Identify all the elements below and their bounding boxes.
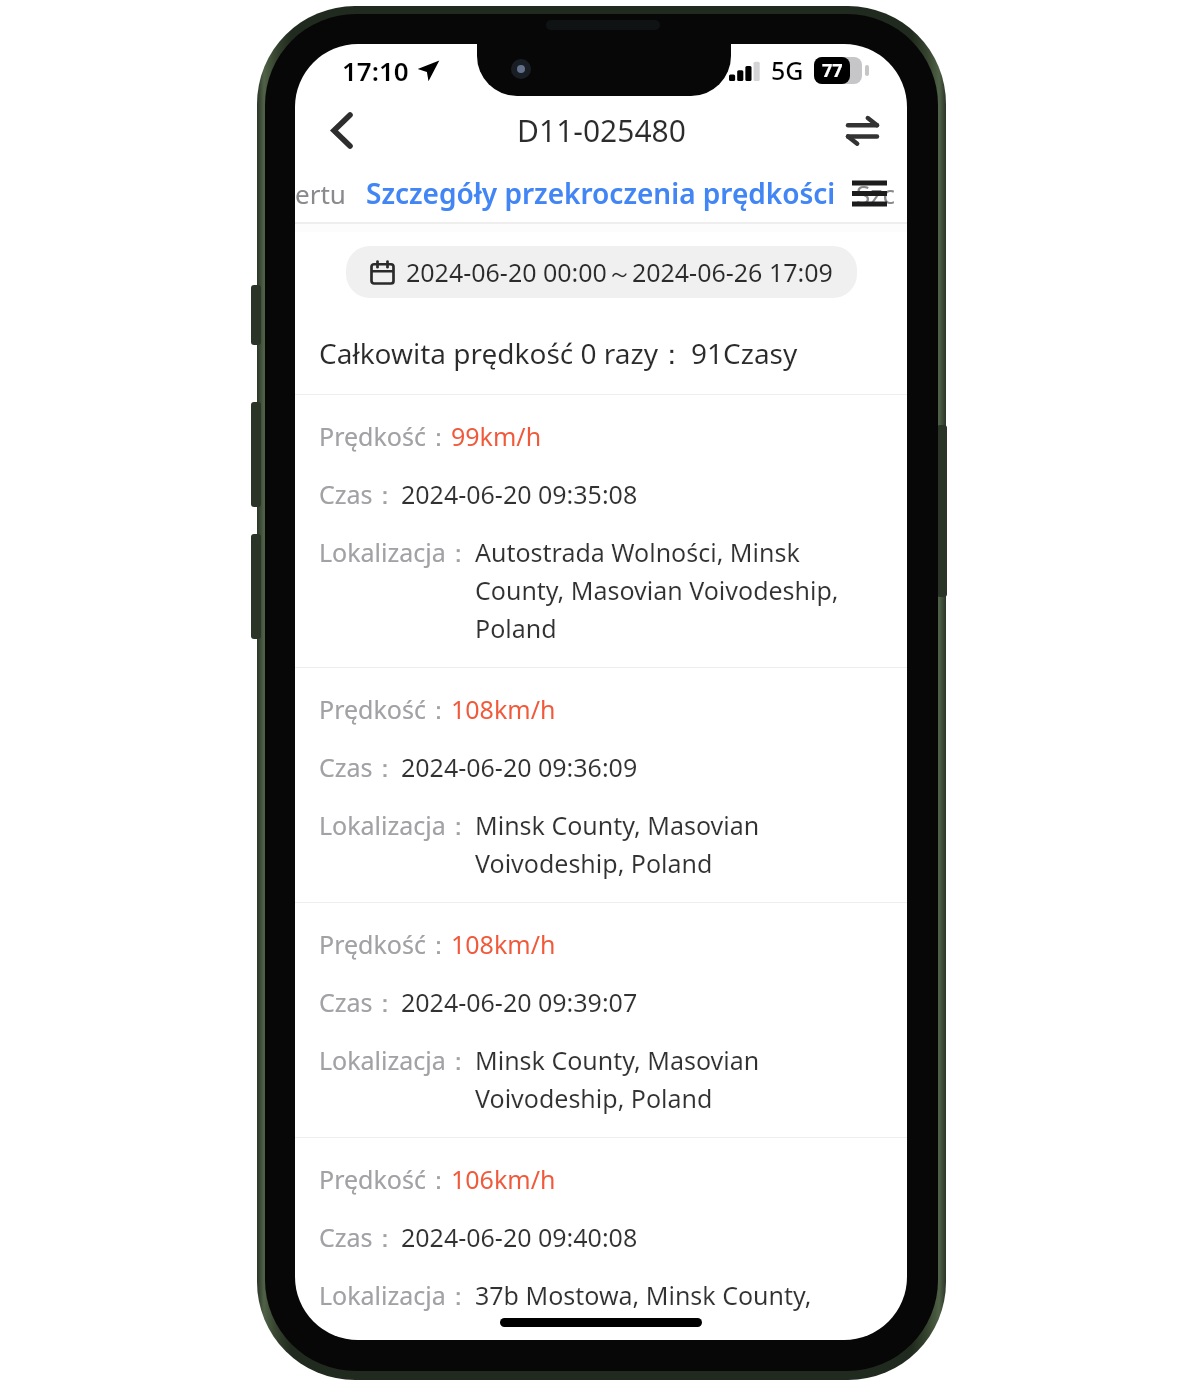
staticText: 2024-06-20 09:36:09 xyxy=(401,750,638,784)
button[interactable]: Prędkość： xyxy=(295,668,907,902)
button[interactable]: Menu xyxy=(841,165,897,221)
staticText: 108km/h xyxy=(451,927,556,961)
staticText: Lokalizacja： xyxy=(319,1278,471,1312)
staticText: Autostrada Wolności, Minsk County, Masov… xyxy=(475,535,889,645)
staticText: Prędkość： xyxy=(319,419,451,453)
staticText: 91Czasy xyxy=(691,334,798,372)
staticText: 77 xyxy=(822,58,843,83)
staticText: Całkowita prędkość 0 razy： xyxy=(319,334,686,372)
staticText: 17:10 xyxy=(342,53,409,88)
button[interactable]: Szczegóły przekroczenia prędkości xyxy=(366,174,836,212)
other: Location xyxy=(417,59,440,82)
staticText: 2024-06-20 09:40:08 xyxy=(401,1220,638,1254)
button[interactable]: Back xyxy=(313,101,371,159)
staticText: 106km/h xyxy=(451,1162,556,1196)
staticText: 2024-06-20 00:00～2024-06-26 17:09 xyxy=(406,255,833,289)
staticText: 37b Mostowa, Minsk County, Masovian Voiv… xyxy=(475,1278,889,1318)
button[interactable]: ertu xyxy=(295,176,346,211)
staticText: Czas： xyxy=(319,985,398,1019)
staticText: Lokalizacja： xyxy=(319,808,471,842)
staticText: Lokalizacja： xyxy=(319,535,471,569)
staticText: Minsk County, Masovian Voivodeship, Pola… xyxy=(475,808,889,880)
staticText: Szczegóły przekroczenia prędkości xyxy=(366,174,836,212)
staticText: D11-025480 xyxy=(517,110,686,151)
staticText: Lokalizacja： xyxy=(319,1043,471,1077)
staticText: Szc xyxy=(856,176,895,211)
button[interactable]: 2024-06-20 00:00～2024-06-26 17:09 xyxy=(346,246,857,298)
button[interactable]: Szc xyxy=(856,176,895,211)
button[interactable]: Prędkość： xyxy=(295,903,907,1137)
staticText: Prędkość： xyxy=(319,692,451,726)
staticText: 2024-06-20 09:39:07 xyxy=(401,985,638,1019)
staticText: Prędkość： xyxy=(319,927,451,961)
button[interactable]: Prędkość： xyxy=(295,1138,907,1340)
staticText: 99km/h xyxy=(451,419,542,453)
staticText: Prędkość： xyxy=(319,1162,451,1196)
staticText: Czas： xyxy=(319,1220,398,1254)
staticText: Czas： xyxy=(319,750,398,784)
staticText: Czas： xyxy=(319,477,398,511)
staticText: 108km/h xyxy=(451,692,556,726)
staticText: 5G xyxy=(771,53,804,87)
button[interactable]: Prędkość： xyxy=(295,395,907,667)
staticText: 2024-06-20 09:35:08 xyxy=(401,477,638,511)
button[interactable]: Switch xyxy=(833,101,891,159)
staticText: Minsk County, Masovian Voivodeship, Pola… xyxy=(475,1043,889,1115)
staticText: ertu xyxy=(295,176,346,211)
